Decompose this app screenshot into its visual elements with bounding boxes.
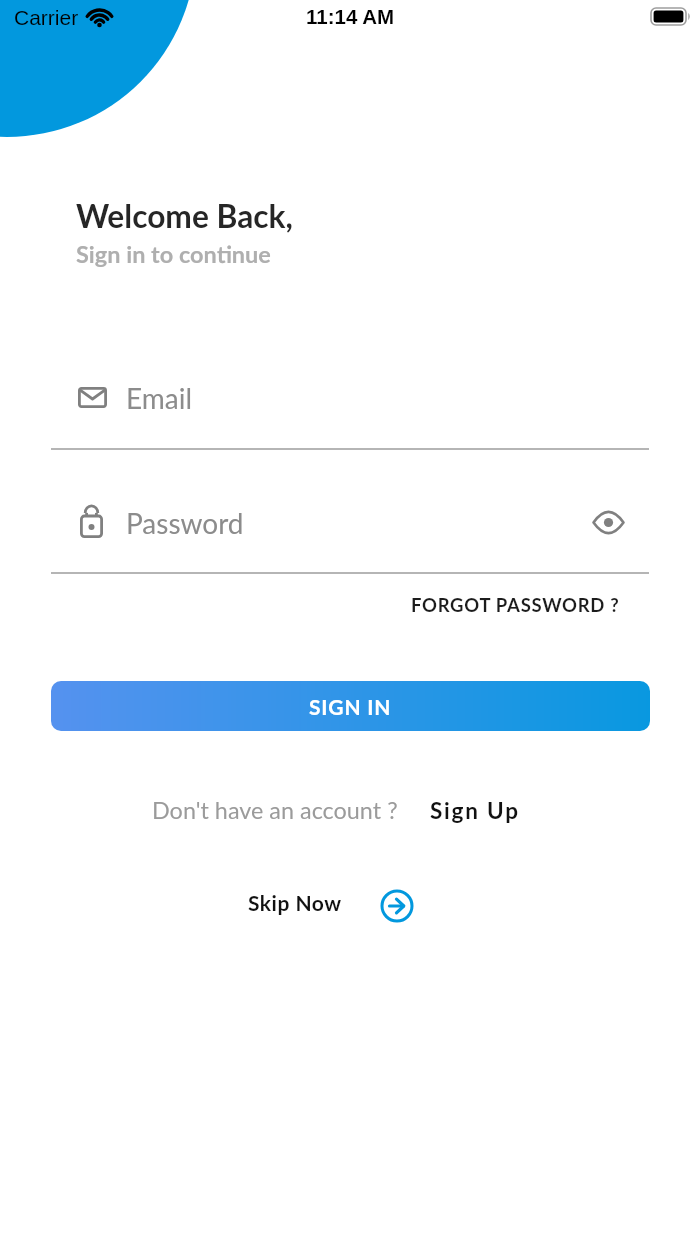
staticText: Password <box>126 506 244 540</box>
button[interactable]: Sign Up <box>430 797 520 824</box>
button[interactable]: FORGOT PASSWORD ? <box>411 594 620 616</box>
staticText: Welcome Back, <box>76 197 293 235</box>
staticText: Carrier <box>14 6 79 29</box>
staticText: SIGN IN <box>309 694 392 719</box>
staticText: Skip Now <box>248 890 342 915</box>
staticText: 11:14 AM <box>306 5 395 28</box>
button[interactable] <box>592 511 625 534</box>
staticText: Email <box>126 381 193 415</box>
button[interactable]: SIGN IN <box>51 681 650 731</box>
staticText: Don't have an account ? <box>152 796 398 824</box>
button[interactable]: Skip Now <box>248 886 416 926</box>
staticText: Sign in to continue <box>76 240 271 268</box>
